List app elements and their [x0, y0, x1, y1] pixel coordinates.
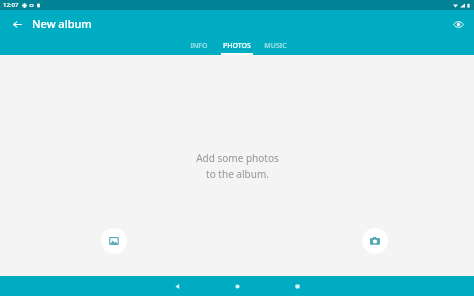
button[interactable]: Back	[7, 14, 27, 34]
button[interactable]: MUSIC	[256, 37, 294, 55]
button[interactable]: Take photo	[362, 228, 388, 254]
button[interactable]: INFO	[180, 37, 218, 55]
staticText: 12:07	[3, 1, 19, 9]
staticText: MUSIC	[264, 41, 287, 51]
button[interactable]: Recent apps	[278, 276, 316, 296]
button[interactable]: Home	[218, 276, 256, 296]
button[interactable]: Visibility	[448, 14, 468, 34]
staticText: to the album.	[206, 167, 269, 181]
button[interactable]: Add from gallery	[101, 228, 127, 254]
button[interactable]: Back	[158, 276, 196, 296]
staticText: INFO	[190, 41, 208, 51]
staticText: PHOTOS	[223, 41, 251, 51]
staticText: New album	[32, 16, 92, 31]
button[interactable]: PHOTOS	[218, 37, 256, 55]
staticText: Add some photos	[196, 151, 279, 165]
